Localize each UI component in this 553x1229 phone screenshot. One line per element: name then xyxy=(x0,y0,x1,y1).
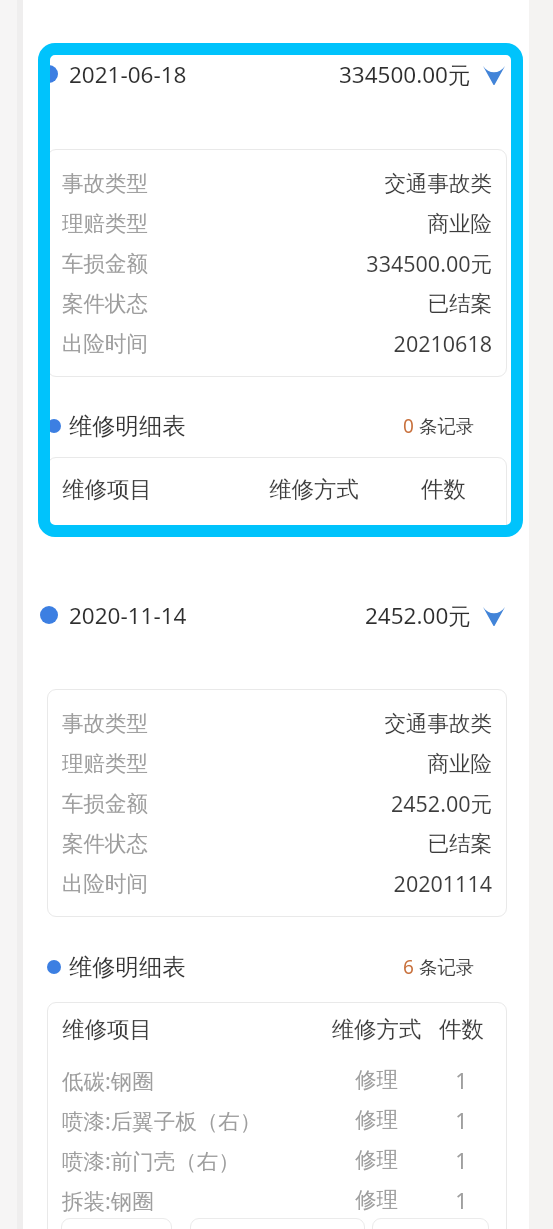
button[interactable]: Collapse claim 2020-11-14 xyxy=(39,593,507,637)
staticText: 维修明细表 xyxy=(69,953,186,982)
staticText: 2020-11-14 xyxy=(69,600,187,631)
staticText: 车损金额 xyxy=(62,790,148,817)
staticText: 已结案 xyxy=(62,290,492,317)
staticText: 20210618 xyxy=(62,329,492,358)
staticText: 2452.00元 xyxy=(62,789,492,818)
staticText: 维修项目 xyxy=(62,475,233,503)
button[interactable]: 事故类型 xyxy=(62,703,492,903)
staticText: 理赔类型 xyxy=(62,210,148,237)
staticText: 拆装:钢圈 xyxy=(62,1186,322,1215)
staticText: 2452.00元 xyxy=(365,600,471,631)
staticText: 已结案 xyxy=(62,830,492,857)
staticText: 件数 xyxy=(431,1015,492,1043)
staticText: 1 xyxy=(431,1146,492,1175)
button[interactable]: 维修项目 xyxy=(47,457,507,535)
staticText: 出险时间 xyxy=(62,870,148,897)
staticText: 喷漆:前门壳（右） xyxy=(62,1146,322,1175)
staticText: 低碳:钢圈 xyxy=(62,1066,322,1095)
staticText: 修理 xyxy=(322,1106,431,1133)
staticText: 案件状态 xyxy=(62,290,148,317)
staticText: 维修项目 xyxy=(62,1015,322,1043)
staticText: 商业险 xyxy=(62,210,492,237)
staticText: 维修方式 xyxy=(322,1015,431,1043)
staticText: 6 xyxy=(403,954,414,980)
staticText: 理赔类型 xyxy=(62,750,148,777)
staticText: 事故类型 xyxy=(62,170,148,197)
staticText: 1 xyxy=(431,1066,492,1095)
staticText: 喷漆:后翼子板（右） xyxy=(62,1106,322,1135)
button[interactable]: 事故类型 xyxy=(62,163,492,363)
staticText: 件数 xyxy=(395,475,492,503)
staticText: 334500.00元 xyxy=(339,59,471,90)
staticText: 20201114 xyxy=(62,869,492,898)
staticText: 维修方式 xyxy=(233,475,395,503)
button[interactable]: Collapse claim 2021-06-18 xyxy=(39,52,507,96)
staticText: 2021-06-18 xyxy=(69,59,187,90)
staticText: 条记录 xyxy=(419,415,475,438)
button[interactable]: 维修明细表 xyxy=(39,406,507,446)
staticText: 条记录 xyxy=(419,956,475,979)
button[interactable]: 维修明细表 xyxy=(39,947,507,987)
staticText: 1 xyxy=(431,1186,492,1215)
staticText: 修理 xyxy=(322,1146,431,1173)
staticText: 交通事故类 xyxy=(62,710,492,737)
button[interactable]: 维修项目 xyxy=(47,1002,507,1229)
staticText: 修理 xyxy=(322,1066,431,1093)
staticText: 1 xyxy=(431,1106,492,1135)
staticText: 交通事故类 xyxy=(62,170,492,197)
staticText: 案件状态 xyxy=(62,830,148,857)
staticText: 车损金额 xyxy=(62,250,148,277)
staticText: 修理 xyxy=(322,1186,431,1213)
staticText: 出险时间 xyxy=(62,330,148,357)
staticText: 0 xyxy=(403,413,414,439)
staticText: 334500.00元 xyxy=(62,249,492,278)
staticText: 商业险 xyxy=(62,750,492,777)
staticText: 事故类型 xyxy=(62,710,148,737)
staticText: 维修明细表 xyxy=(69,412,186,441)
